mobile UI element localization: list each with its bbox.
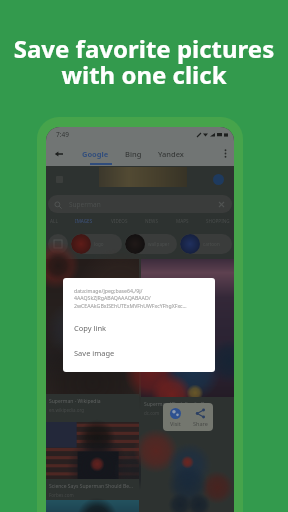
button[interactable]: VIDEOS <box>111 213 128 229</box>
button[interactable]: Save image <box>63 340 215 365</box>
button[interactable]: Superman - Wikipedia <box>46 394 139 422</box>
staticText: NEWS <box>145 218 158 224</box>
staticText: Superman - Wikipedia <box>49 398 101 405</box>
staticText: data:image/jpeg;base64,/9j/ 4AAQSkZJRgAB… <box>74 287 187 309</box>
staticText: Bing <box>125 149 142 159</box>
staticText: IMAGES <box>75 218 93 224</box>
staticText: Superman <box>69 200 101 209</box>
staticText: VIDEOS <box>111 218 128 224</box>
button[interactable]: Image result <box>46 259 139 394</box>
button[interactable]: Copy link <box>63 315 215 340</box>
staticText: Science Says Superman Should Be... <box>49 483 134 490</box>
button[interactable]: IMAGES <box>75 213 93 229</box>
button[interactable]: ALL <box>50 213 58 229</box>
staticText: Save favorite pictures with one click <box>0 32 288 91</box>
staticText: Save image <box>74 348 115 358</box>
staticText: Google <box>82 149 109 159</box>
staticText: Visit <box>170 420 181 427</box>
button[interactable]: NEWS <box>145 213 158 229</box>
staticText: 7:49 <box>56 130 69 139</box>
button[interactable]: Bing <box>121 141 146 166</box>
button[interactable]: SHOPPING <box>206 213 230 229</box>
staticText: MAPS <box>176 218 189 224</box>
staticText: Forbes.com <box>49 492 74 498</box>
button[interactable]: Google Lens <box>48 234 68 254</box>
staticText: en.wikipedia.org <box>49 407 85 413</box>
staticText: Yandex <box>158 149 184 159</box>
button[interactable]: MAPS <box>176 213 189 229</box>
button[interactable]: Image result <box>46 500 139 512</box>
button[interactable]: Superman (Clark Kent) - D... <box>141 397 234 430</box>
staticText: wallpaper <box>148 241 170 247</box>
staticText: logo <box>94 241 104 247</box>
button[interactable]: Share <box>188 403 213 431</box>
button[interactable]: Image result <box>46 422 139 479</box>
button[interactable]: wallpaper <box>125 234 177 254</box>
staticText: SHOPPING <box>206 218 230 224</box>
staticText: ALL <box>50 218 58 224</box>
staticText: cartoon <box>203 241 220 247</box>
button[interactable]: Visit <box>163 403 188 431</box>
button[interactable]: Image result <box>141 259 234 397</box>
staticText: Share <box>193 420 208 427</box>
button[interactable]: Science Says Superman Should Be... <box>46 479 139 500</box>
button[interactable]: Superman <box>48 195 232 213</box>
button[interactable]: Yandex <box>154 141 188 166</box>
button[interactable]: cartoon <box>180 234 232 254</box>
staticText: Copy link <box>74 323 107 333</box>
staticText: Superman (Clark Kent) - D... <box>144 401 209 408</box>
button[interactable]: logo <box>71 234 122 254</box>
button[interactable]: Image result <box>141 430 234 512</box>
button[interactable]: Back <box>46 141 72 166</box>
staticText: dc.com <box>144 410 160 416</box>
button[interactable]: Google <box>78 141 113 166</box>
button[interactable]: More options <box>216 141 234 166</box>
